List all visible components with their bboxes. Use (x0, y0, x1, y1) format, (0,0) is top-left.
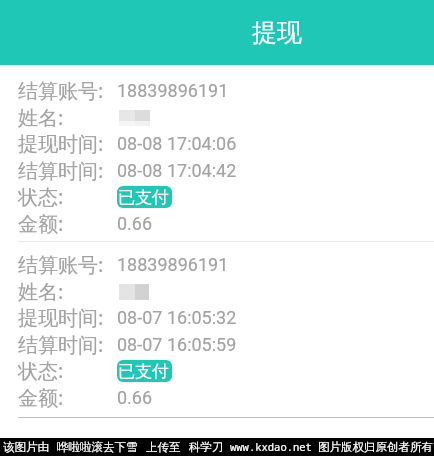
staticText: 金额: (18, 210, 64, 237)
staticText: 结算时间: (18, 331, 104, 358)
staticText: 08-08 17:04:06 (117, 133, 237, 154)
staticText: 08-07 16:05:32 (117, 307, 237, 328)
staticText: 提现 (252, 17, 302, 48)
staticText: 已支付 (118, 187, 169, 208)
staticText: 状态: (18, 357, 64, 384)
staticText: 图片版权归原创者所有 (318, 440, 433, 454)
staticText: 已支付 (118, 361, 169, 382)
staticText: www.kxdao.net (230, 440, 312, 454)
staticText: 提现时间: (18, 304, 104, 331)
staticText: 08-07 16:05:59 (117, 334, 237, 355)
staticText: 08-08 17:04:42 (117, 160, 237, 181)
staticText: 18839896191 (117, 254, 229, 275)
button[interactable]: 结算账号: (0, 77, 434, 237)
staticText: 状态: (18, 183, 64, 210)
staticText: 科学刀 (189, 440, 224, 454)
button[interactable]: 结算账号: (0, 251, 434, 411)
staticText: 18839896191 (117, 80, 229, 101)
staticText: 0.66 (117, 387, 153, 408)
staticText: 结算账号: (18, 77, 104, 104)
staticText: 姓名: (18, 104, 64, 131)
staticText: 0.66 (117, 213, 153, 234)
staticText: 上传至 (146, 440, 181, 454)
staticText: 该图片由 (3, 440, 49, 454)
staticText: 提现时间: (18, 130, 104, 157)
staticText: 哗啦啦滚去下雪 (57, 440, 138, 454)
staticText: 结算账号: (18, 251, 104, 278)
staticText: 金额: (18, 384, 64, 411)
staticText: 结算时间: (18, 157, 104, 184)
staticText: 姓名: (18, 278, 64, 305)
